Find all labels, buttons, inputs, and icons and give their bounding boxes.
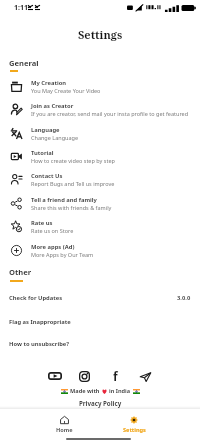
staticText: Made with (70, 387, 100, 395)
button[interactable]: Flag as Inappropriate (0, 311, 200, 333)
staticText: Settings (78, 27, 123, 41)
staticText: Contact Us (31, 172, 63, 180)
staticText: Other (9, 267, 32, 277)
staticText: Home (56, 426, 73, 434)
button[interactable]: Contact Us (0, 168, 200, 191)
staticText: How to create video step by step (31, 157, 115, 164)
staticText: in India (109, 387, 131, 395)
staticText: Check for Updates (9, 294, 63, 302)
button[interactable]: My Creation (0, 75, 200, 98)
button[interactable]: Privacy Policy (79, 399, 122, 407)
button[interactable]: Facebook (108, 368, 122, 384)
staticText: If you are creator, send mail your insta… (31, 110, 189, 117)
staticText: Settings (123, 426, 146, 434)
staticText: 3.0.0 (177, 294, 191, 302)
staticText: 1:11 (14, 3, 28, 13)
button[interactable]: Telegram (137, 369, 153, 385)
button[interactable]: Language (0, 122, 200, 145)
staticText: Tutorial (31, 149, 54, 157)
button[interactable]: More apps (Ad) (0, 239, 200, 262)
staticText: General (9, 58, 39, 68)
staticText: My Creation (31, 79, 67, 87)
staticText: Rate us on Store (31, 227, 74, 234)
button[interactable]: Instagram (76, 368, 92, 384)
staticText: Join as Creator (31, 102, 74, 110)
staticText: Share this with friends & family (31, 204, 112, 211)
button[interactable]: Tell a friend and family (0, 192, 200, 215)
button[interactable]: How to unsubscribe? (0, 333, 200, 355)
staticText: More Apps by Our Team (31, 251, 94, 258)
button[interactable]: Join as Creator (0, 98, 200, 121)
button[interactable]: YouTube (47, 368, 63, 384)
staticText: Flag as Inappropriate (9, 318, 71, 326)
staticText: Rate us (31, 219, 53, 227)
staticText: How to unsubscribe? (9, 340, 70, 348)
button[interactable]: Home (42, 412, 86, 434)
button[interactable]: Rate us (0, 215, 200, 238)
staticText: Report Bugs and Tell us improve (31, 180, 115, 187)
button[interactable]: Settings (112, 412, 156, 434)
staticText: Tell a friend and family (31, 196, 97, 204)
staticText: You May Create Your Video (31, 87, 101, 94)
button[interactable]: Check for Updates (0, 287, 200, 309)
staticText: Language (31, 126, 60, 134)
staticText: f (113, 368, 118, 384)
staticText: More apps (Ad) (31, 243, 75, 251)
staticText: Change Language (31, 134, 78, 141)
button[interactable]: Tutorial (0, 145, 200, 168)
